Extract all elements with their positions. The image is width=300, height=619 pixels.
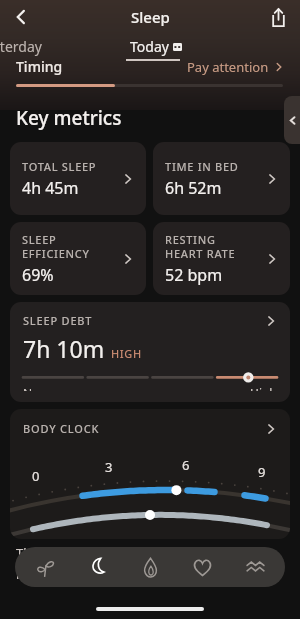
button[interactable]: Timing	[0, 61, 300, 91]
button[interactable]: BODY CLOCK	[10, 409, 290, 539]
staticText: High	[250, 385, 277, 391]
staticText: Pay attention	[187, 58, 269, 76]
staticText: RESTING HEART RATE	[165, 232, 236, 261]
button[interactable]: Back	[4, 0, 38, 34]
button[interactable]: Sleep	[76, 547, 120, 587]
staticText: 6h 52m	[165, 177, 222, 199]
staticText: 6	[182, 456, 190, 474]
button[interactable]: Sprout	[23, 547, 67, 587]
staticText: HIGH	[111, 346, 142, 361]
button[interactable]: SLEEP DEBT	[10, 302, 290, 402]
button[interactable]: SLEEP EFFICIENCY	[10, 222, 146, 295]
button[interactable]: Share	[262, 1, 294, 33]
button[interactable]: Open panel	[284, 96, 300, 144]
staticText: 69%	[22, 264, 54, 286]
staticText: 9	[258, 463, 266, 481]
button[interactable]: Heart	[180, 547, 224, 587]
button[interactable]: Trends	[233, 547, 277, 587]
staticText: SLEEP DEBT	[23, 313, 93, 328]
staticText: Today	[130, 37, 169, 56]
staticText: minutes behind your chronotype.	[16, 565, 220, 583]
button[interactable]: Today	[130, 37, 182, 56]
staticText: 3	[105, 458, 113, 476]
button[interactable]: TIME IN BED	[153, 142, 290, 215]
staticText: Key metrics	[16, 105, 122, 131]
staticText: This is roughly 30	[16, 544, 123, 562]
staticText: 52 bpm	[165, 264, 223, 286]
staticText: SLEEP EFFICIENCY	[22, 232, 90, 261]
staticText: Sleep	[131, 7, 170, 27]
button[interactable]: Activity	[128, 547, 172, 587]
staticText: BODY CLOCK	[23, 421, 100, 436]
button[interactable]: Yesterday	[0, 37, 42, 56]
staticText: 7h 10m	[23, 333, 105, 364]
staticText: TIME IN BED	[165, 159, 239, 174]
button[interactable]: RESTING HEART RATE	[153, 222, 290, 295]
staticText: TOTAL SLEEP	[22, 159, 97, 174]
staticText: 4h 45m	[22, 177, 79, 199]
button[interactable]: TOTAL SLEEP	[10, 142, 146, 215]
staticText: None	[23, 385, 54, 391]
staticText: Timing	[16, 57, 63, 76]
staticText: 0	[32, 467, 40, 485]
